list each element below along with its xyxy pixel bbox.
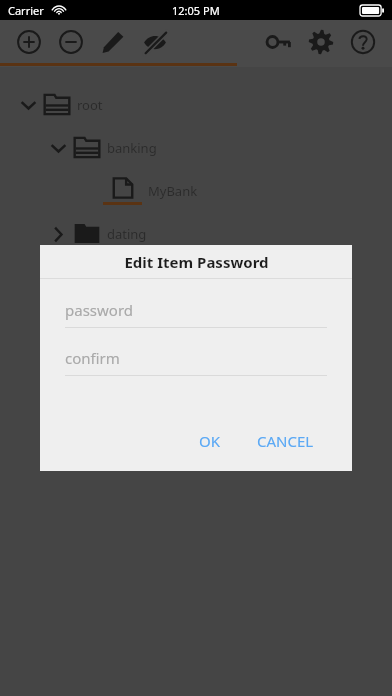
staticText: Edit Item Password — [124, 252, 269, 272]
staticText: password — [65, 300, 133, 320]
button[interactable]: Help — [342, 20, 384, 63]
staticText: Carrier — [8, 3, 44, 18]
button[interactable]: Hide — [134, 20, 176, 63]
button[interactable]: OK — [189, 425, 231, 457]
button[interactable]: Add — [8, 20, 50, 63]
button[interactable]: Password — [258, 20, 300, 63]
staticText: MyBank — [148, 182, 198, 200]
staticText: dating — [107, 225, 147, 243]
staticText: confirm — [65, 348, 120, 368]
button[interactable]: MyBank — [0, 169, 392, 212]
button[interactable]: Settings — [300, 20, 342, 63]
button[interactable]: Edit — [92, 20, 134, 63]
button[interactable]: banking — [0, 126, 392, 169]
staticText: 12:05 PM — [172, 3, 220, 18]
button[interactable]: dating — [0, 212, 392, 255]
staticText: CANCEL — [257, 431, 314, 451]
staticText: OK — [199, 431, 221, 451]
button[interactable]: CANCEL — [247, 425, 324, 457]
button[interactable]: Remove — [50, 20, 92, 63]
button[interactable]: root — [0, 83, 392, 126]
staticText: banking — [107, 139, 157, 157]
staticText: root — [77, 96, 103, 114]
